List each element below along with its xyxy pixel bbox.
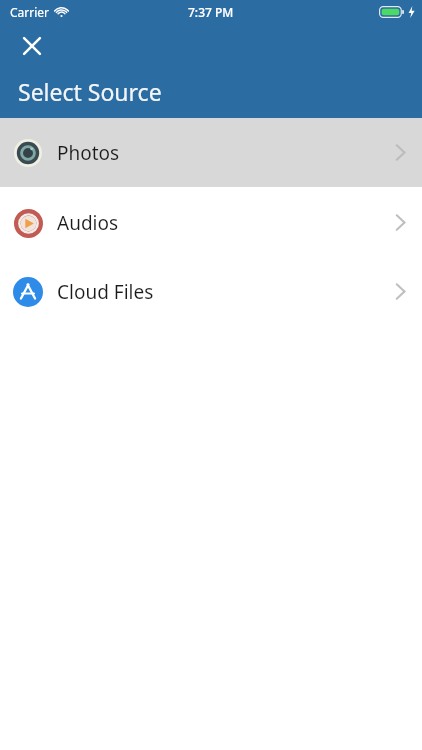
staticText: Select Source bbox=[18, 76, 162, 107]
staticText: Cloud Files bbox=[57, 279, 154, 305]
staticText: Photos bbox=[57, 140, 120, 166]
staticText: Audios bbox=[57, 210, 119, 236]
staticText: Carrier bbox=[10, 4, 50, 20]
button[interactable]: Cloud Files bbox=[0, 257, 422, 326]
staticText: 7:37 PM bbox=[188, 4, 234, 20]
button[interactable]: Close bbox=[12, 26, 52, 66]
button[interactable]: Photos bbox=[0, 118, 422, 187]
button[interactable]: Audios bbox=[0, 188, 422, 257]
